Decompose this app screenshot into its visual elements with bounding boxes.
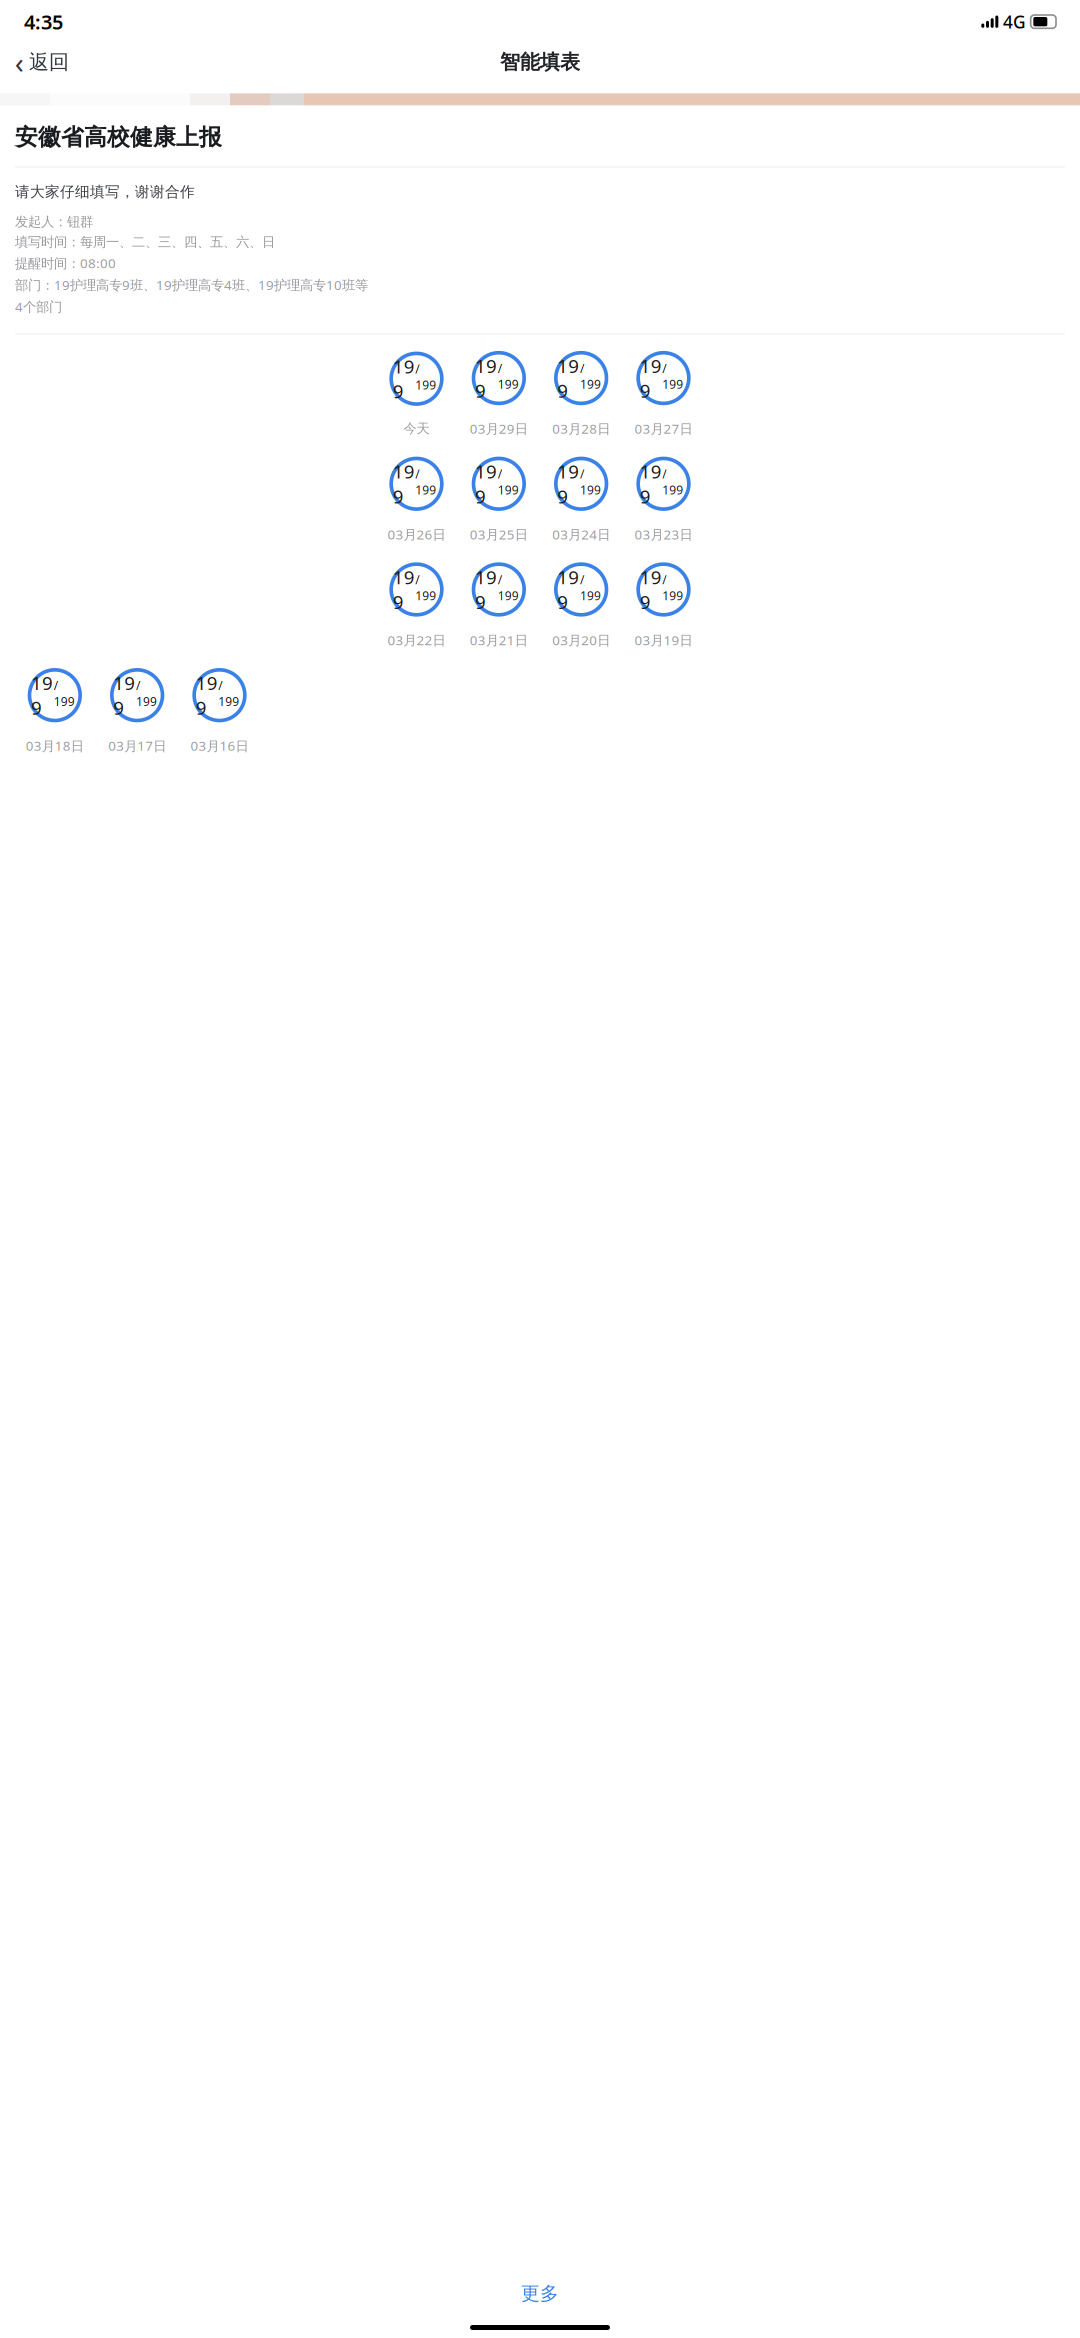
staticText: /199 bbox=[580, 572, 601, 604]
staticText: 199 bbox=[31, 670, 53, 720]
button[interactable]: 199 bbox=[622, 562, 705, 649]
staticText: 03月16日 bbox=[190, 737, 248, 754]
staticText: 03月24日 bbox=[552, 525, 610, 543]
staticText: 03月17日 bbox=[108, 737, 166, 754]
staticText: 03月25日 bbox=[470, 525, 528, 543]
button[interactable]: 199 bbox=[540, 456, 622, 543]
staticText: /199 bbox=[580, 466, 601, 498]
staticText: /199 bbox=[498, 360, 519, 392]
button[interactable]: 199 bbox=[375, 351, 458, 437]
staticText: /199 bbox=[218, 677, 239, 709]
staticText: 智能填表 bbox=[500, 50, 580, 74]
staticText: 03月28日 bbox=[552, 420, 610, 437]
staticText: 199 bbox=[393, 459, 415, 509]
button[interactable]: 199 bbox=[458, 456, 540, 543]
staticText: 03月27日 bbox=[634, 420, 692, 437]
staticText: /199 bbox=[662, 360, 683, 392]
staticText: 4:35 bbox=[24, 8, 63, 35]
staticText: /199 bbox=[54, 677, 75, 709]
staticText: /199 bbox=[498, 572, 519, 604]
staticText: 安徽省高校健康上报 bbox=[15, 123, 222, 151]
staticText: 03月20日 bbox=[552, 631, 610, 649]
staticText: 199 bbox=[557, 459, 579, 509]
staticText: 199 bbox=[393, 354, 415, 403]
staticText: 03月19日 bbox=[634, 631, 692, 649]
button[interactable]: 199 bbox=[540, 350, 622, 437]
staticText: 199 bbox=[475, 459, 497, 509]
button[interactable]: ‹ bbox=[4, 38, 80, 86]
button[interactable]: 199 bbox=[622, 350, 705, 437]
staticText: 提醒时间：08:00 bbox=[15, 254, 116, 272]
staticText: /199 bbox=[415, 572, 436, 604]
button[interactable]: 199 bbox=[96, 667, 178, 754]
staticText: 4G bbox=[1003, 10, 1026, 33]
button[interactable]: 199 bbox=[178, 667, 261, 754]
button[interactable]: 199 bbox=[458, 562, 540, 649]
staticText: 199 bbox=[196, 670, 218, 720]
staticText: 199 bbox=[475, 565, 497, 614]
button[interactable]: 更多 bbox=[0, 2276, 1080, 2311]
staticText: 请大家仔细填写，谢谢合作 bbox=[15, 183, 195, 201]
staticText: 今天 bbox=[403, 420, 429, 437]
staticText: /199 bbox=[662, 572, 683, 604]
staticText: ‹ bbox=[15, 42, 24, 81]
button[interactable]: 199 bbox=[375, 562, 458, 649]
button[interactable]: 199 bbox=[622, 456, 705, 543]
staticText: 03月26日 bbox=[387, 525, 445, 543]
staticText: 填写时间：每周一、二、三、四、五、六、日 bbox=[15, 234, 275, 250]
staticText: 03月22日 bbox=[387, 631, 445, 649]
staticText: 199 bbox=[557, 565, 579, 614]
staticText: 03月18日 bbox=[26, 737, 84, 754]
button[interactable]: 199 bbox=[375, 456, 458, 543]
staticText: /199 bbox=[415, 361, 436, 393]
staticText: 发起人：钮群 bbox=[15, 213, 93, 230]
staticText: 更多 bbox=[521, 2282, 559, 2305]
staticText: 199 bbox=[475, 353, 497, 403]
staticText: /199 bbox=[662, 466, 683, 498]
staticText: 199 bbox=[393, 565, 415, 614]
button[interactable]: 199 bbox=[458, 350, 540, 437]
staticText: /199 bbox=[498, 466, 519, 498]
staticText: 返回 bbox=[29, 50, 69, 74]
staticText: /199 bbox=[136, 677, 157, 709]
staticText: 03月29日 bbox=[470, 420, 528, 437]
button[interactable]: 199 bbox=[14, 667, 96, 754]
staticText: 03月21日 bbox=[470, 631, 528, 649]
staticText: 199 bbox=[113, 670, 135, 720]
staticText: /199 bbox=[415, 466, 436, 498]
staticText: 199 bbox=[557, 353, 579, 403]
staticText: 4个部门 bbox=[15, 298, 62, 315]
staticText: 03月23日 bbox=[634, 525, 692, 543]
staticText: 199 bbox=[640, 565, 662, 614]
staticText: /199 bbox=[580, 360, 601, 392]
staticText: 199 bbox=[640, 353, 662, 403]
button[interactable]: 199 bbox=[540, 562, 622, 649]
staticText: 199 bbox=[640, 459, 662, 509]
staticText: 部门：19护理高专9班、19护理高专4班、19护理高专10班等 bbox=[15, 276, 368, 294]
